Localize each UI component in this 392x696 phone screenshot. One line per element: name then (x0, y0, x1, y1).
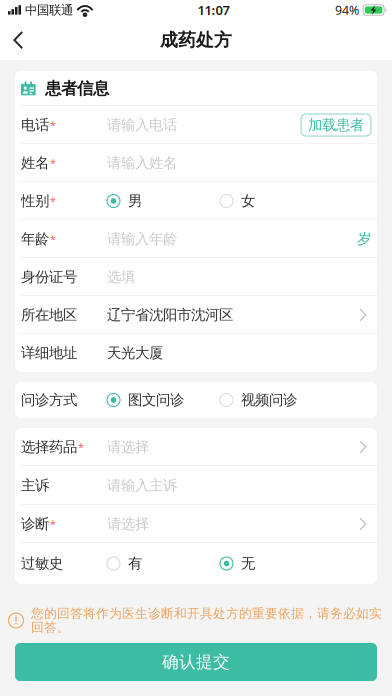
staticText: 详细地址 (21, 344, 77, 362)
staticText: 姓名 (21, 154, 49, 172)
staticText: 成药处方 (160, 29, 232, 51)
button[interactable]: 诊断 (15, 505, 377, 543)
staticText: 身份证号 (21, 268, 77, 286)
staticText: 所在地区 (21, 306, 77, 324)
staticText: 您的回答将作为医生诊断和开具处方的重要依据，请务必如实 (31, 605, 382, 622)
staticText: 男 (128, 192, 142, 210)
staticText: * (50, 156, 56, 170)
staticText: 请输入电话 (107, 116, 177, 134)
staticText: 请选择 (107, 438, 149, 456)
staticText: 确认提交 (162, 651, 230, 672)
staticText: 94% (335, 2, 359, 18)
staticText: 图文问诊 (128, 391, 184, 409)
staticText: 女 (241, 192, 255, 210)
staticText: * (50, 517, 56, 531)
staticText: 年龄 (21, 230, 49, 248)
staticText: 过敏史 (21, 554, 63, 572)
staticText: 天光大厦 (107, 344, 163, 362)
staticText: 电话 (21, 116, 49, 134)
staticText: 请选择 (107, 515, 149, 533)
staticText: 11:07 (197, 1, 229, 19)
staticText: 辽宁省沈阳市沈河区 (107, 306, 233, 324)
staticText: 患者信息 (45, 78, 109, 99)
staticText: 选择药品 (21, 438, 77, 456)
staticText: 有 (128, 554, 142, 572)
button[interactable]: 返回 (0, 20, 38, 60)
staticText: 回答。 (31, 619, 70, 635)
button[interactable]: 确认提交 (15, 643, 377, 681)
staticText: 视频问诊 (241, 391, 297, 409)
staticText: 主诉 (21, 476, 49, 494)
staticText: * (50, 118, 56, 132)
button[interactable]: 所在地区 (15, 296, 377, 334)
staticText: 岁 (357, 230, 371, 248)
staticText: * (50, 194, 56, 208)
button[interactable]: 选择药品 (15, 428, 377, 466)
button[interactable]: 加载患者 (301, 114, 371, 136)
staticText: 请输入姓名 (107, 154, 177, 172)
staticText: * (50, 232, 56, 246)
staticText: 加载患者 (308, 116, 364, 134)
staticText: 问诊方式 (21, 391, 77, 409)
staticText: 无 (241, 554, 255, 572)
staticText: 请输入主诉 (107, 476, 177, 494)
staticText: 性别 (21, 192, 49, 210)
staticText: 中国联通 (25, 2, 73, 18)
staticText: 诊断 (21, 515, 49, 533)
staticText: 选填 (107, 268, 135, 286)
staticText: * (78, 440, 84, 454)
staticText: 请输入年龄 (107, 230, 177, 248)
